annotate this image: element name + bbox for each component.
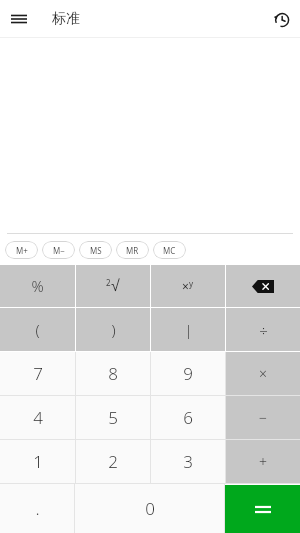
staticText: × bbox=[259, 364, 267, 383]
staticText: 9 bbox=[183, 362, 193, 385]
staticText: 1 bbox=[33, 450, 43, 473]
staticText: MR bbox=[126, 245, 139, 256]
staticText: | bbox=[184, 320, 193, 340]
staticText: 5 bbox=[108, 406, 118, 429]
staticText: ) bbox=[111, 320, 116, 340]
staticText: 3 bbox=[183, 450, 193, 473]
button[interactable]: ) bbox=[76, 308, 150, 351]
button[interactable]: % bbox=[0, 265, 75, 307]
staticText: 标准 bbox=[52, 10, 80, 28]
button[interactable]: 6 bbox=[151, 396, 225, 439]
button[interactable]: Backspace bbox=[226, 265, 300, 307]
staticText: ÷ bbox=[259, 320, 268, 340]
button[interactable]: Menu bbox=[0, 0, 38, 38]
button[interactable]: . bbox=[0, 484, 74, 533]
staticText: y bbox=[189, 278, 194, 289]
button[interactable]: − bbox=[226, 396, 300, 439]
button[interactable]: + bbox=[226, 440, 300, 483]
button[interactable]: 0 bbox=[75, 484, 224, 533]
button[interactable]: ÷ bbox=[226, 308, 300, 351]
button[interactable]: 3 bbox=[151, 440, 225, 483]
staticText: − bbox=[259, 408, 267, 427]
staticText: + bbox=[259, 452, 267, 471]
button[interactable]: 2 bbox=[76, 440, 150, 483]
staticText: 2 bbox=[108, 450, 118, 473]
staticText: √ bbox=[111, 277, 120, 295]
button[interactable]: MC bbox=[153, 241, 186, 259]
staticText: 4 bbox=[33, 406, 43, 429]
button[interactable]: 7 bbox=[0, 352, 75, 395]
button[interactable]: Square root bbox=[76, 265, 150, 307]
button[interactable]: ( bbox=[0, 308, 75, 351]
staticText: . bbox=[35, 497, 40, 520]
button[interactable] bbox=[225, 485, 300, 533]
button[interactable]: x to the power of y bbox=[151, 265, 225, 307]
staticText: MC bbox=[163, 245, 176, 256]
staticText: 0 bbox=[145, 497, 155, 520]
button[interactable]: 1 bbox=[0, 440, 75, 483]
button[interactable]: MR bbox=[116, 241, 149, 259]
button[interactable]: M+ bbox=[5, 241, 38, 259]
staticText: × bbox=[182, 278, 189, 294]
staticText: ( bbox=[35, 320, 40, 340]
staticText: 2 bbox=[106, 277, 111, 288]
button[interactable]: 4 bbox=[0, 396, 75, 439]
button[interactable]: M− bbox=[42, 241, 75, 259]
button[interactable]: 5 bbox=[76, 396, 150, 439]
button[interactable]: 8 bbox=[76, 352, 150, 395]
staticText: % bbox=[31, 276, 44, 296]
staticText: 8 bbox=[108, 362, 118, 385]
button[interactable]: MS bbox=[79, 241, 112, 259]
staticText: 7 bbox=[33, 362, 43, 385]
button[interactable]: 9 bbox=[151, 352, 225, 395]
staticText: 6 bbox=[183, 406, 193, 429]
button[interactable]: | bbox=[151, 308, 225, 351]
staticText: M+ bbox=[16, 245, 28, 256]
button[interactable]: × bbox=[226, 352, 300, 395]
staticText: M− bbox=[53, 245, 65, 256]
button[interactable]: History bbox=[262, 0, 300, 38]
staticText: MS bbox=[90, 245, 102, 256]
